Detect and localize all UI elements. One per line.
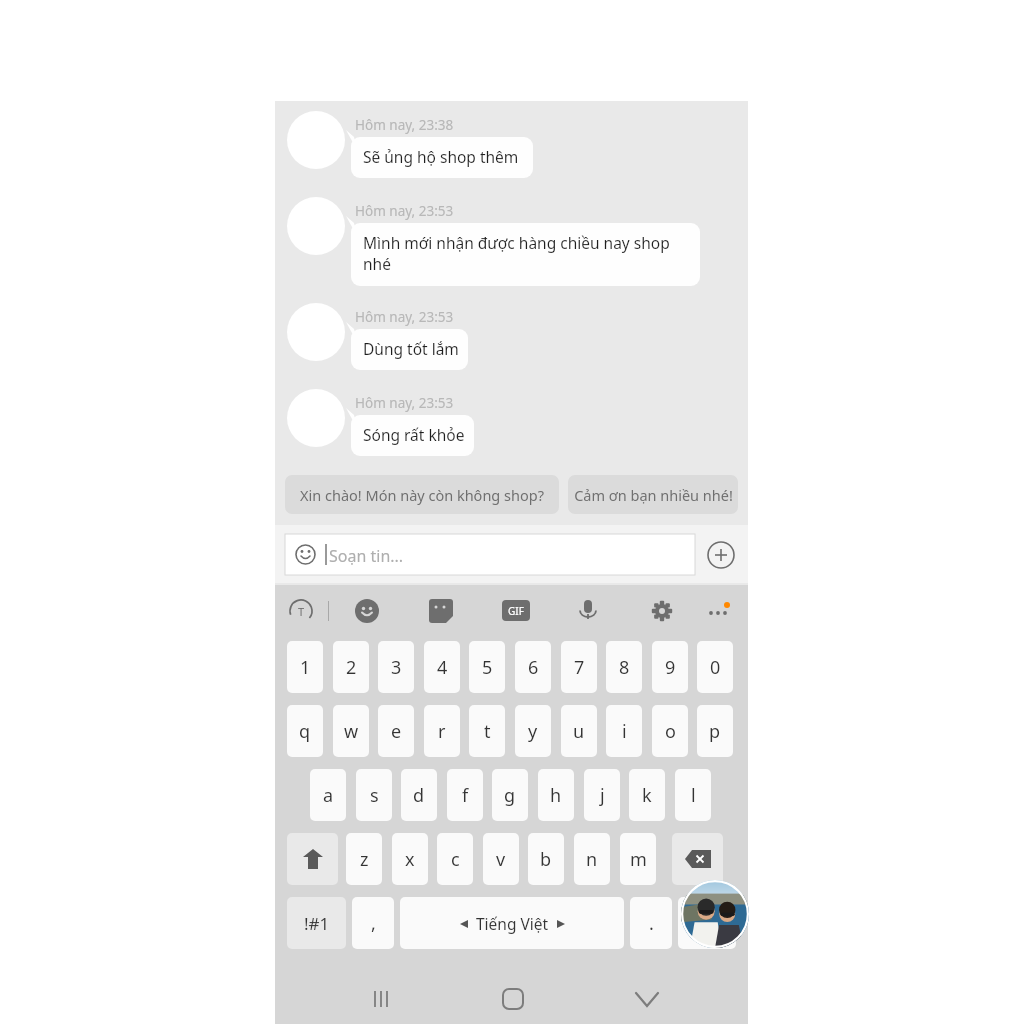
staticText: p bbox=[709, 719, 721, 744]
button[interactable]: i bbox=[606, 705, 642, 757]
button[interactable]: Translate bbox=[288, 598, 314, 624]
button[interactable]: Tiếng Việt bbox=[400, 897, 624, 949]
button[interactable]: Soạn tin... bbox=[285, 534, 695, 575]
button[interactable]: 1 bbox=[287, 641, 323, 693]
button[interactable]: l bbox=[675, 769, 711, 821]
button[interactable]: g bbox=[492, 769, 528, 821]
button[interactable]: Add attachment bbox=[707, 541, 735, 569]
button[interactable]: Sóng rất khỏe bbox=[351, 415, 474, 456]
button[interactable]: b bbox=[528, 833, 564, 885]
button[interactable]: Hide keyboard bbox=[627, 987, 667, 1011]
button[interactable]: . bbox=[630, 897, 672, 949]
staticText: 4 bbox=[437, 655, 448, 680]
staticText: Sẽ ủng hộ shop thêm bbox=[363, 146, 519, 167]
button[interactable]: z bbox=[346, 833, 382, 885]
button[interactable]: Contact avatar bbox=[287, 197, 345, 255]
staticText: o bbox=[665, 719, 676, 744]
button[interactable]: j bbox=[584, 769, 620, 821]
button[interactable]: Sẽ ủng hộ shop thêm bbox=[351, 137, 533, 178]
staticText: j bbox=[600, 783, 605, 808]
staticText: Hôm nay, 23:53 bbox=[355, 308, 454, 326]
button[interactable]: Mình mới nhận được hàng chiều nay shop bbox=[351, 223, 700, 286]
button[interactable]: Dùng tốt lắm bbox=[351, 329, 468, 370]
staticText: x bbox=[405, 847, 415, 872]
staticText: u bbox=[573, 719, 585, 744]
button[interactable]: p bbox=[697, 705, 733, 757]
button[interactable]: 0 bbox=[697, 641, 733, 693]
button[interactable]: t bbox=[469, 705, 505, 757]
staticText: 5 bbox=[482, 655, 493, 680]
button[interactable]: 3 bbox=[378, 641, 414, 693]
staticText: Sóng rất khỏe bbox=[363, 424, 465, 445]
button[interactable]: Home bbox=[493, 987, 533, 1011]
button[interactable]: r bbox=[424, 705, 460, 757]
button[interactable]: h bbox=[538, 769, 574, 821]
staticText: Soạn tin... bbox=[329, 545, 404, 567]
staticText: w bbox=[344, 719, 359, 744]
button[interactable]: x bbox=[392, 833, 428, 885]
button[interactable]: v bbox=[483, 833, 519, 885]
staticText: Cảm ơn bạn nhiều nhé! bbox=[574, 485, 733, 505]
button[interactable]: Voice input bbox=[576, 598, 600, 622]
staticText: . bbox=[649, 911, 654, 936]
staticText: 6 bbox=[528, 655, 539, 680]
button[interactable]: Emoji bbox=[355, 599, 379, 623]
staticText: , bbox=[371, 911, 376, 936]
button[interactable]: q bbox=[287, 705, 323, 757]
staticText: a bbox=[323, 783, 334, 808]
button[interactable]: c bbox=[437, 833, 473, 885]
button[interactable]: a bbox=[310, 769, 346, 821]
button[interactable]: GIF bbox=[502, 600, 530, 621]
button[interactable]: o bbox=[652, 705, 688, 757]
button[interactable]: u bbox=[561, 705, 597, 757]
button[interactable]: More options bbox=[707, 603, 733, 619]
button[interactable]: m bbox=[620, 833, 656, 885]
button[interactable]: Stickers bbox=[429, 599, 453, 623]
button[interactable]: s bbox=[356, 769, 392, 821]
button[interactable]: Contact avatar bbox=[287, 111, 345, 169]
button[interactable]: 5 bbox=[469, 641, 505, 693]
staticText: l bbox=[691, 783, 696, 808]
button[interactable]: y bbox=[515, 705, 551, 757]
button[interactable]: Recent apps bbox=[362, 987, 402, 1011]
button[interactable]: 4 bbox=[424, 641, 460, 693]
staticText: d bbox=[413, 783, 425, 808]
button[interactable]: 9 bbox=[652, 641, 688, 693]
button[interactable]: Backspace bbox=[672, 833, 723, 885]
button[interactable]: Shift bbox=[287, 833, 338, 885]
staticText: y bbox=[528, 719, 538, 744]
staticText: 0 bbox=[710, 655, 721, 680]
staticText: 9 bbox=[665, 655, 676, 680]
button[interactable]: Xin chào! Món này còn không shop? bbox=[285, 475, 559, 514]
button[interactable]: Contact avatar bbox=[287, 389, 345, 447]
button[interactable]: k bbox=[629, 769, 665, 821]
button[interactable]: w bbox=[333, 705, 369, 757]
button[interactable]: e bbox=[378, 705, 414, 757]
button[interactable]: , bbox=[352, 897, 394, 949]
staticText: i bbox=[622, 719, 627, 744]
staticText: 1 bbox=[300, 655, 311, 680]
staticText: T bbox=[298, 604, 305, 619]
staticText: Dùng tốt lắm bbox=[363, 338, 459, 359]
button[interactable]: 6 bbox=[515, 641, 551, 693]
button[interactable]: Contact avatar bbox=[287, 303, 345, 361]
staticText: Mình mới nhận được hàng chiều nay shop bbox=[363, 232, 670, 253]
button[interactable]: 2 bbox=[333, 641, 369, 693]
button[interactable]: 7 bbox=[561, 641, 597, 693]
staticText: z bbox=[360, 847, 369, 872]
button[interactable]: !#1 bbox=[287, 897, 346, 949]
staticText: c bbox=[451, 847, 460, 872]
staticText: m bbox=[630, 847, 647, 872]
button[interactable]: Keyboard settings bbox=[650, 599, 674, 623]
staticText: b bbox=[540, 847, 552, 872]
button[interactable]: f bbox=[447, 769, 483, 821]
button[interactable]: d bbox=[401, 769, 437, 821]
button[interactable]: n bbox=[574, 833, 610, 885]
button[interactable]: 8 bbox=[606, 641, 642, 693]
button[interactable]: Profile picture bbox=[681, 880, 749, 948]
button[interactable]: Cảm ơn bạn nhiều nhé! bbox=[568, 475, 738, 514]
button[interactable] bbox=[678, 897, 736, 949]
staticText: Xin chào! Món này còn không shop? bbox=[300, 485, 544, 505]
staticText: k bbox=[642, 783, 652, 808]
staticText: 2 bbox=[346, 655, 357, 680]
